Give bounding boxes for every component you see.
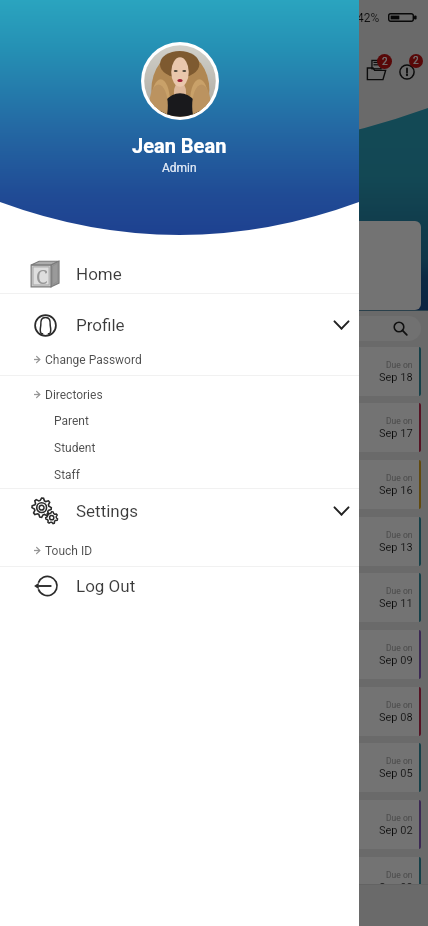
button[interactable]: Directories [0,376,359,408]
staticText: 2 [382,56,388,68]
staticText: 42% [357,11,380,25]
staticText: Sep 11 [379,597,413,610]
button[interactable]: Documents [362,50,394,82]
staticText: Sep 13 [379,541,413,554]
button[interactable]: Search [265,316,421,341]
staticText: Touch ID [45,544,93,558]
staticText: Sep 09 [379,654,413,667]
button[interactable]: Due on [24,403,421,452]
staticText: Change Password [45,353,142,367]
button[interactable]: Alerts [394,50,426,82]
button[interactable]: Due on [24,857,421,906]
staticText: Parent [54,414,89,428]
button[interactable]: Due on [24,460,421,509]
button[interactable]: Settings [0,489,359,534]
staticText: Due on [386,870,413,880]
button[interactable]: Due on [24,347,421,396]
staticText: Sep 02 [379,824,413,837]
button[interactable]: Due on [24,630,421,679]
staticText: Due on [386,473,413,483]
staticText: Due on [386,416,413,426]
staticText: Due on [386,360,413,370]
button[interactable]: Profile [0,294,359,347]
staticText: C [36,264,48,285]
staticText: Sep 02 [379,881,413,894]
staticText: Admin [162,161,197,175]
button[interactable]: Due on [24,800,421,849]
staticText: Due on [386,813,413,823]
staticText: 2 [413,55,419,67]
button[interactable]: Touch ID [0,534,359,566]
button[interactable]: Staff [0,462,359,488]
button[interactable]: Student [0,435,359,462]
staticText: Sep 08 [379,711,413,724]
staticText: Student [54,441,96,455]
staticText: Settings [76,501,139,521]
staticText: Home [76,264,122,284]
staticText: Directories [45,388,103,402]
button[interactable]: C [0,247,359,293]
staticText: Staff [54,468,80,482]
staticText: Due on [386,643,413,653]
button[interactable]: Due on [24,573,421,622]
staticText: Due on [386,700,413,710]
button[interactable]: Due on [24,743,421,792]
staticText: Due on [386,756,413,766]
staticText: Sep 05 [379,767,413,780]
staticText: Sep 17 [379,427,413,440]
staticText: Sep 16 [379,484,413,497]
staticText: Jean Bean [132,134,227,157]
button[interactable]: Due on [24,517,421,566]
staticText: Log Out [76,576,136,596]
staticText: Profile [76,315,125,335]
button[interactable]: Log Out [0,567,359,612]
button[interactable]: Due on [24,687,421,736]
staticText: Sep 18 [379,371,413,384]
button[interactable]: Parent [0,408,359,435]
staticText: Due on [386,530,413,540]
staticText: Due on [386,586,413,596]
button[interactable]: Change Password [0,347,359,375]
